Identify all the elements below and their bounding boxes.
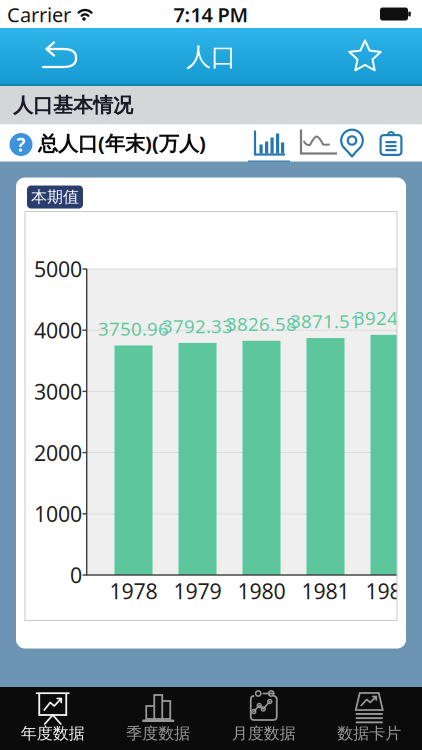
staticText: 人口	[186, 41, 236, 72]
button[interactable]: 年度数据	[0, 687, 105, 750]
button[interactable]: Back	[0, 28, 59, 84]
staticText: 季度数据	[126, 724, 190, 743]
button[interactable]: Line chart	[298, 128, 338, 156]
button[interactable]: 数据卡片	[316, 687, 422, 750]
staticText: 3000	[34, 377, 82, 405]
button[interactable]: Data table	[378, 129, 404, 157]
staticText: 人口基本情况	[13, 93, 133, 118]
staticText: 年度数据	[21, 724, 85, 743]
staticText: 月度数据	[232, 724, 296, 743]
staticText: 1000	[34, 500, 82, 528]
staticText: Carrier	[7, 1, 71, 28]
staticText: 3792.33	[162, 313, 233, 338]
staticText: 本期值	[31, 187, 79, 207]
button[interactable]: Map	[339, 129, 365, 157]
button[interactable]: Indicator info	[6, 129, 36, 159]
button[interactable]: Favorite	[335, 28, 395, 84]
staticText: 3871.51	[290, 309, 361, 333]
staticText: 2000	[34, 438, 82, 467]
staticText: 1978	[109, 577, 157, 605]
staticText: 1980	[237, 577, 285, 605]
staticText: 0	[70, 561, 82, 589]
button[interactable]: 月度数据	[211, 687, 316, 750]
staticText: 3826.58	[226, 311, 297, 336]
staticText: 4000	[34, 316, 82, 344]
staticText: 3924.35	[354, 305, 422, 330]
staticText: 总人口(年末)(万人)	[38, 130, 206, 156]
button[interactable]: Bar chart	[248, 128, 290, 164]
staticText: 数据卡片	[337, 724, 401, 743]
staticText: 7:14 PM	[173, 1, 248, 28]
staticText: 1982	[365, 577, 413, 605]
staticText: 3750.96	[98, 316, 169, 341]
staticText: 1979	[173, 577, 221, 605]
staticText: 1981	[301, 577, 349, 605]
staticText: ?	[16, 132, 25, 157]
button[interactable]: 季度数据	[105, 687, 211, 750]
staticText: 5000	[34, 255, 82, 283]
